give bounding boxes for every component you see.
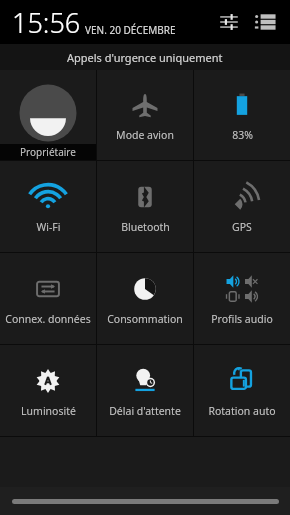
button[interactable]: Wi-Fi bbox=[0, 161, 96, 252]
button[interactable]: Notifications bbox=[250, 7, 280, 37]
staticText: Délai d'attente bbox=[109, 404, 181, 418]
button[interactable]: GPS bbox=[194, 161, 290, 252]
button[interactable]: Délai d'attente bbox=[97, 345, 193, 436]
button[interactable]: Fermer le panneau bbox=[0, 487, 290, 515]
staticText: Propriétaire bbox=[20, 145, 76, 159]
staticText: Bluetooth bbox=[121, 220, 170, 234]
button[interactable]: Bluetooth bbox=[97, 161, 193, 252]
staticText: GPS bbox=[232, 220, 252, 234]
staticText: Luminosité bbox=[21, 404, 76, 418]
button[interactable]: Consommation bbox=[97, 253, 193, 344]
button[interactable]: Mode avion bbox=[97, 70, 193, 160]
staticText: 15:56 bbox=[12, 4, 81, 41]
button[interactable]: Profils audio bbox=[194, 253, 290, 344]
staticText: Appels d'urgence uniquement bbox=[67, 50, 223, 65]
staticText: Consommation bbox=[107, 312, 183, 326]
staticText: 83% bbox=[232, 128, 253, 142]
staticText: Wi-Fi bbox=[36, 220, 61, 234]
button[interactable]: Propriétaire bbox=[0, 70, 96, 160]
button[interactable]: Luminosité bbox=[0, 345, 96, 436]
staticText: Profils audio bbox=[211, 312, 273, 326]
button[interactable]: Paramètres bbox=[214, 7, 244, 37]
staticText: Mode avion bbox=[116, 128, 174, 142]
staticText: Connex. données bbox=[5, 312, 91, 326]
staticText: VEN. 20 DÉCEMBRE bbox=[85, 23, 176, 37]
button[interactable]: Batterie 83 pourcent bbox=[194, 70, 290, 160]
staticText: Rotation auto bbox=[208, 404, 276, 418]
button[interactable]: Connexion données bbox=[0, 253, 96, 344]
button[interactable]: Rotation auto bbox=[194, 345, 290, 436]
